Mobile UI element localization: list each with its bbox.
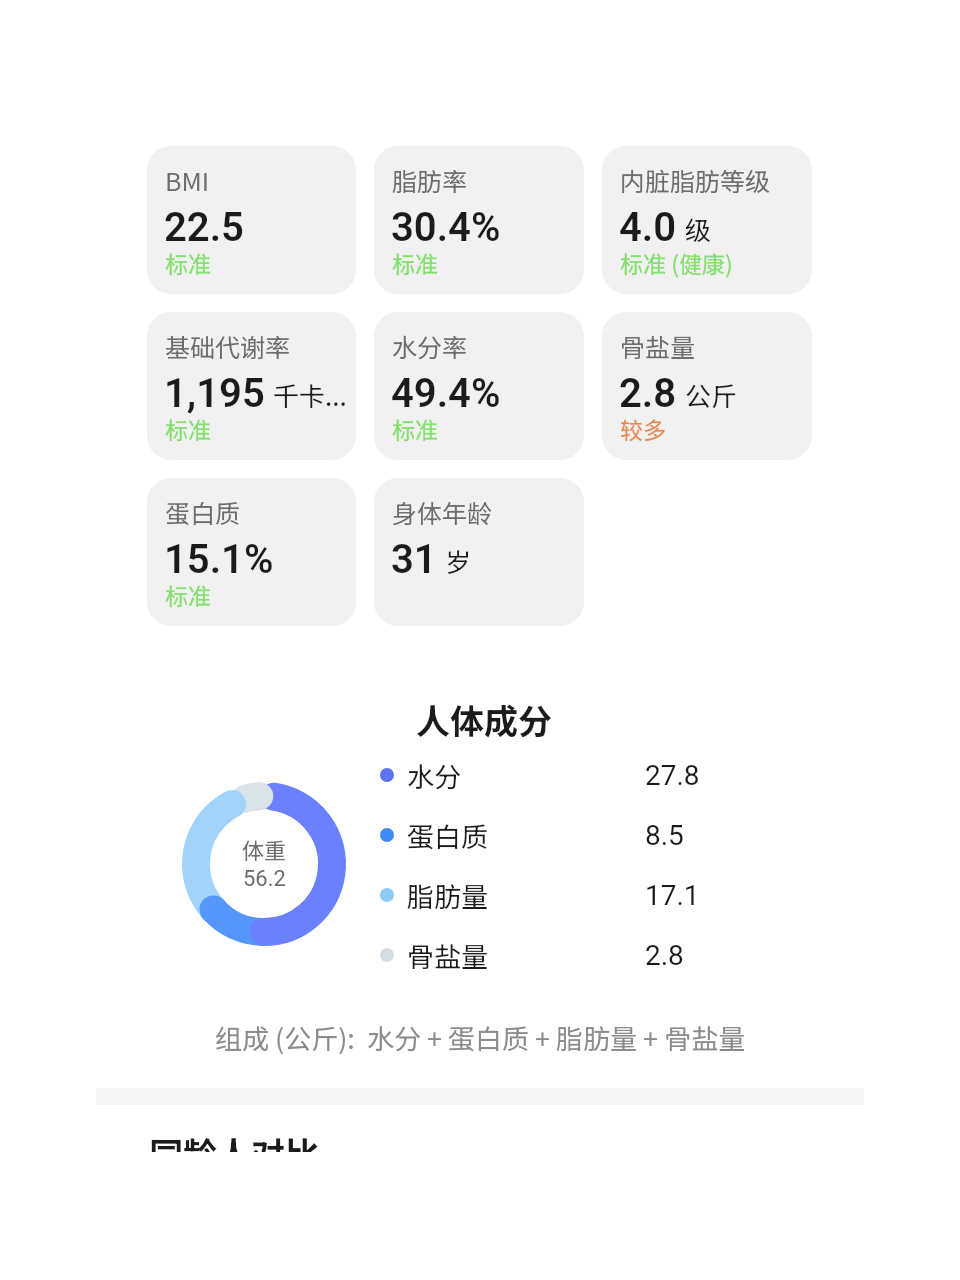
staticText: BMI xyxy=(165,162,210,198)
button[interactable]: 身体年龄 xyxy=(374,478,584,626)
staticText: 体重 xyxy=(242,833,287,865)
button[interactable]: 骨盐量 xyxy=(380,925,740,985)
staticText: 内脏脂肪等级 xyxy=(620,162,771,198)
staticText: 水分 xyxy=(407,756,461,795)
staticText: 骨盐量 xyxy=(620,328,696,364)
staticText: 岁 xyxy=(445,542,472,580)
staticText: 千卡... xyxy=(273,376,347,414)
staticText: 15.1% xyxy=(164,536,274,583)
staticText: 标准 xyxy=(165,578,211,611)
button[interactable]: 脂肪率 xyxy=(374,146,584,294)
staticText: 同龄人对比 xyxy=(149,1128,319,1177)
staticText: 基础代谢率 xyxy=(165,328,291,364)
other: 体重 56.2 公斤 人体成分环形图 xyxy=(182,782,346,946)
button[interactable]: 内脏脂肪等级 xyxy=(602,146,812,294)
button[interactable]: BMI xyxy=(147,146,356,294)
staticText: 标准 xyxy=(392,246,438,279)
button[interactable]: 基础代谢率 xyxy=(147,312,356,460)
staticText: 较多 xyxy=(620,412,666,445)
staticText: 4.0 xyxy=(619,204,677,251)
staticText: 2.8 xyxy=(645,939,684,972)
staticText: 27.8 xyxy=(645,759,700,792)
staticText: 31 xyxy=(391,536,437,583)
staticText: 2.8 xyxy=(619,370,677,417)
staticText: 公斤 xyxy=(685,376,738,414)
staticText: 蛋白质 xyxy=(407,816,488,855)
staticText: 标准 (健康) xyxy=(620,246,733,279)
staticText: 1,195 xyxy=(164,370,265,417)
staticText: 17.1 xyxy=(645,879,700,912)
staticText: 骨盐量 xyxy=(407,936,488,975)
staticText: 脂肪量 xyxy=(407,876,488,915)
button[interactable]: 水分 xyxy=(380,745,740,805)
staticText: 身体年龄 xyxy=(392,494,493,530)
staticText: 水分率 xyxy=(392,328,468,364)
staticText: 56.2 xyxy=(243,866,286,892)
button[interactable]: 水分率 xyxy=(374,312,584,460)
staticText: 8.5 xyxy=(645,819,684,852)
staticText: 人体成分 xyxy=(416,695,552,744)
staticText: 49.4% xyxy=(391,370,501,417)
button[interactable]: 脂肪量 xyxy=(380,865,740,925)
staticText: 组成 (公斤): 水分 + 蛋白质 + 脂肪量 + 骨盐量 xyxy=(215,1018,746,1057)
button[interactable]: 蛋白质 xyxy=(380,805,740,865)
staticText: 脂肪率 xyxy=(392,162,468,198)
staticText: 级 xyxy=(685,210,712,248)
staticText: 30.4% xyxy=(391,204,501,251)
button[interactable]: 蛋白质 xyxy=(147,478,356,626)
staticText: 22.5 xyxy=(164,204,244,251)
staticText: 蛋白质 xyxy=(165,494,241,530)
staticText: 标准 xyxy=(165,412,211,445)
staticText: 标准 xyxy=(392,412,438,445)
button[interactable]: 骨盐量 xyxy=(602,312,812,460)
staticText: 标准 xyxy=(165,246,211,279)
